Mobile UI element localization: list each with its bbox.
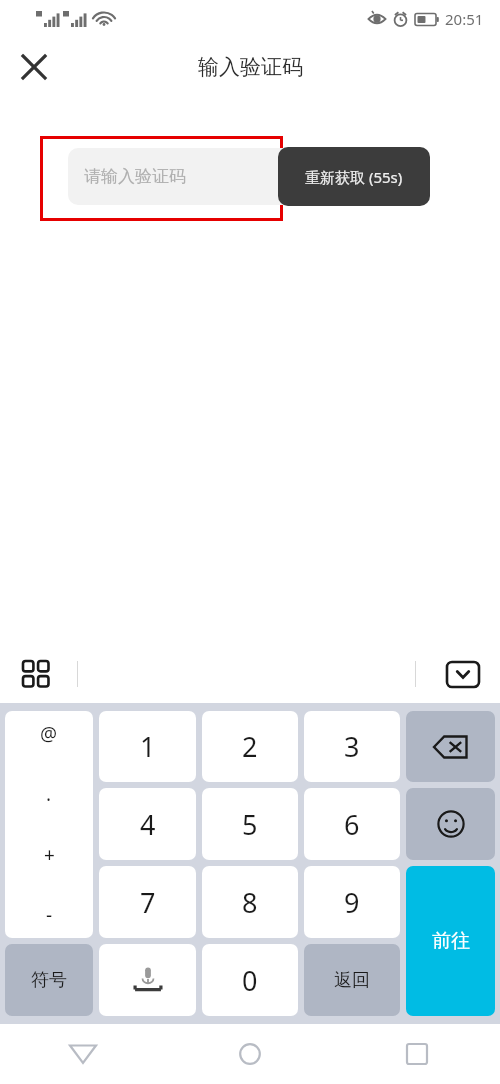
button[interactable]: Backspace xyxy=(406,711,495,782)
button[interactable]: Recents xyxy=(333,1024,500,1084)
staticText: . xyxy=(46,781,52,807)
button[interactable]: Close xyxy=(10,43,58,91)
button[interactable]: 重新获取 (55s) xyxy=(278,147,430,206)
button[interactable]: 5 xyxy=(202,788,298,860)
button[interactable]: Hide keyboard xyxy=(440,651,486,697)
button[interactable]: 符号 xyxy=(5,944,93,1016)
staticText: 5 xyxy=(242,806,258,843)
staticText: + xyxy=(44,842,55,868)
staticText: 8 xyxy=(242,884,258,921)
staticText: 20:51 xyxy=(445,9,484,29)
other: Backspace xyxy=(406,711,495,782)
button[interactable]: Home xyxy=(166,1024,333,1084)
other: Voice input xyxy=(99,944,196,1016)
staticText: 0 xyxy=(242,962,258,999)
staticText: 9 xyxy=(344,884,360,921)
button[interactable]: 前往 xyxy=(406,866,495,1016)
staticText: 输入验证码 xyxy=(198,54,303,80)
button[interactable]: 请输入验证码 xyxy=(68,148,396,205)
button[interactable]: 1 xyxy=(99,711,196,782)
button[interactable]: 0 xyxy=(202,944,298,1016)
staticText: 返回 xyxy=(334,969,370,992)
other: Emoji xyxy=(406,788,495,860)
staticText: @ xyxy=(40,721,58,747)
button[interactable]: Voice input xyxy=(99,944,196,1016)
button[interactable]: Emoji xyxy=(406,788,495,860)
staticText: 7 xyxy=(140,884,156,921)
staticText: 4 xyxy=(140,806,156,843)
button[interactable]: 4 xyxy=(99,788,196,860)
button[interactable]: Back xyxy=(0,1024,166,1084)
button[interactable]: 2 xyxy=(202,711,298,782)
button[interactable]: 7 xyxy=(99,866,196,938)
staticText: 3 xyxy=(344,728,360,765)
staticText: 符号 xyxy=(31,969,67,992)
staticText: 请输入验证码 xyxy=(84,166,186,187)
button[interactable]: 返回 xyxy=(304,944,400,1016)
staticText: 6 xyxy=(344,806,360,843)
staticText: 1 xyxy=(140,728,156,765)
button[interactable]: 3 xyxy=(304,711,400,782)
staticText: 前往 xyxy=(432,929,470,953)
button[interactable]: 8 xyxy=(202,866,298,938)
button[interactable]: 6 xyxy=(304,788,400,860)
staticText: 重新获取 (55s) xyxy=(305,167,403,187)
button[interactable]: @ xyxy=(5,711,93,938)
button[interactable]: 9 xyxy=(304,866,400,938)
button[interactable]: Keyboard layouts xyxy=(12,650,60,698)
staticText: - xyxy=(46,902,53,928)
staticText: 2 xyxy=(242,728,258,765)
